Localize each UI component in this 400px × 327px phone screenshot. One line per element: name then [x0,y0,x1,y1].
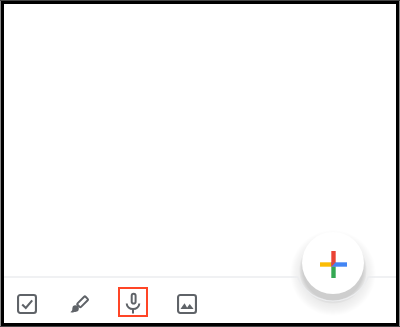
button[interactable]: New recording [118,287,148,317]
button[interactable]: New drawing [63,288,95,320]
button[interactable]: Create new note [302,232,364,294]
button[interactable]: New list [11,288,43,320]
button[interactable]: New image [171,288,203,320]
